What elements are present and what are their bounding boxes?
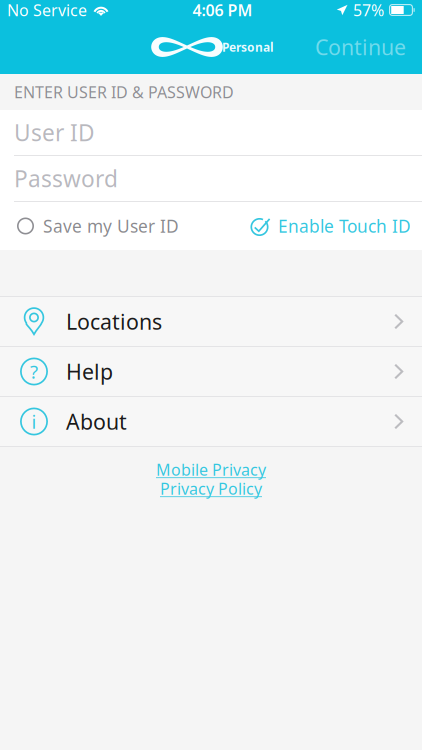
- staticText: About: [66, 407, 127, 436]
- button[interactable]: Save my User ID: [0, 205, 185, 246]
- staticText: Privacy Policy: [160, 478, 262, 499]
- button[interactable]: User ID: [0, 110, 422, 155]
- button[interactable]: Enable Touch ID: [244, 205, 422, 246]
- button[interactable]: Mobile Privacy: [156, 461, 266, 478]
- staticText: Save my User ID: [43, 214, 179, 237]
- staticText: Personal: [222, 39, 274, 55]
- button[interactable]: Privacy Policy: [160, 480, 262, 497]
- button[interactable]: Password: [0, 156, 422, 201]
- button[interactable]: Locations: [0, 297, 422, 346]
- staticText: Help: [66, 357, 113, 386]
- button[interactable]: Continue: [303, 23, 422, 71]
- staticText: i: [31, 409, 36, 434]
- button[interactable]: i: [0, 397, 422, 446]
- button[interactable]: ?: [0, 347, 422, 396]
- staticText: Continue: [315, 33, 406, 61]
- staticText: User ID: [14, 117, 95, 147]
- staticText: No Service: [7, 0, 87, 21]
- staticText: 57%: [353, 0, 384, 21]
- staticText: Enable Touch ID: [278, 214, 411, 237]
- staticText: ENTER USER ID & PASSWORD: [14, 81, 234, 103]
- staticText: ?: [30, 359, 38, 384]
- staticText: 4:06 PM: [192, 0, 252, 21]
- staticText: Mobile Privacy: [156, 459, 266, 480]
- staticText: Password: [14, 163, 118, 193]
- staticText: Locations: [66, 307, 162, 336]
